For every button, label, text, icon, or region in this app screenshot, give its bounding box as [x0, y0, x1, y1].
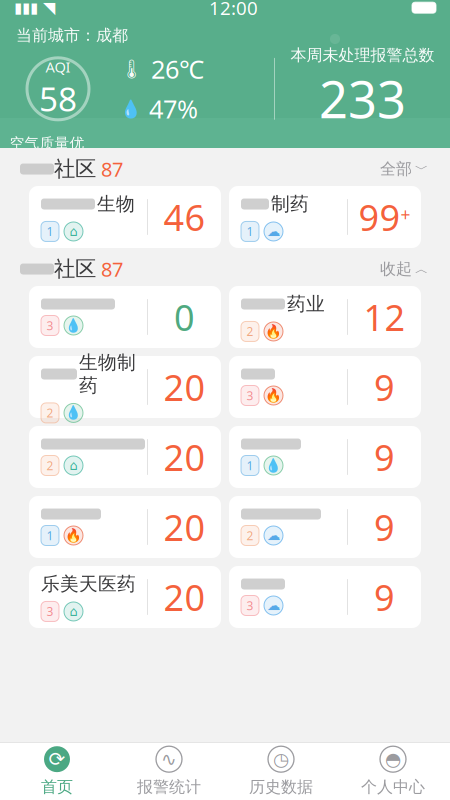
- staticText: 收起: [380, 259, 412, 279]
- button[interactable]: ◓: [337, 742, 449, 800]
- button[interactable]: 3: [229, 566, 421, 628]
- staticText: 历史数据: [249, 777, 313, 797]
- staticText: 9: [374, 573, 395, 621]
- button[interactable]: 2: [229, 496, 421, 558]
- staticText: ☁: [267, 598, 280, 613]
- staticText: 空气质量优: [9, 134, 84, 152]
- staticText: 20: [163, 573, 205, 621]
- staticText: 🔥: [265, 388, 282, 403]
- button[interactable]: 全部: [378, 155, 430, 183]
- button[interactable]: ∿: [113, 742, 225, 800]
- staticText: 58: [39, 76, 77, 121]
- button[interactable]: 收起: [378, 255, 430, 283]
- staticText: +: [400, 203, 410, 226]
- staticText: ⌂: [69, 604, 77, 619]
- staticText: ⌂: [69, 458, 77, 473]
- staticText: 12:00: [209, 0, 258, 20]
- button[interactable]: ◷: [225, 742, 337, 800]
- staticText: 🌡: [120, 58, 144, 80]
- staticText: 12: [363, 293, 405, 341]
- staticText: 87: [96, 156, 123, 182]
- staticText: 当前城市：成都: [16, 26, 128, 45]
- staticText: 1: [246, 223, 253, 239]
- staticText: AQI: [45, 57, 70, 76]
- staticText: ﹀: [415, 161, 428, 177]
- staticText: 💧: [65, 318, 82, 333]
- staticText: 9: [374, 363, 395, 411]
- staticText: 20: [163, 433, 205, 481]
- staticText: 3: [246, 387, 253, 403]
- staticText: ▮▮▮: [14, 0, 38, 16]
- button[interactable]: 生物制药: [29, 356, 221, 418]
- staticText: ︿: [415, 261, 428, 277]
- button[interactable]: 生物: [29, 186, 221, 248]
- staticText: 报警统计: [137, 777, 201, 797]
- staticText: 20: [163, 363, 205, 411]
- staticText: 制药: [271, 192, 309, 215]
- staticText: 47%: [149, 92, 198, 125]
- staticText: 3: [246, 597, 253, 613]
- staticText: 1: [46, 527, 53, 543]
- button[interactable]: 乐美天医药: [29, 566, 221, 628]
- staticText: 首页: [41, 777, 73, 797]
- staticText: 26℃: [151, 52, 204, 86]
- staticText: 生物: [97, 192, 135, 215]
- staticText: 🔥: [65, 528, 82, 543]
- button[interactable]: 药业: [229, 286, 421, 348]
- staticText: 3: [46, 317, 53, 333]
- button[interactable]: 制药: [229, 186, 421, 248]
- button[interactable]: ⟳: [1, 742, 113, 800]
- staticText: 1: [246, 457, 253, 473]
- staticText: 0: [174, 293, 195, 341]
- staticText: 全部: [380, 159, 412, 179]
- staticText: 99: [358, 193, 400, 241]
- button[interactable]: 1: [29, 496, 221, 558]
- staticText: 社区: [54, 156, 96, 182]
- staticText: ⌂: [69, 224, 77, 239]
- staticText: 🔥: [265, 324, 282, 339]
- staticText: 233: [319, 65, 406, 132]
- staticText: ◥: [43, 0, 55, 17]
- staticText: 20: [163, 503, 205, 551]
- staticText: ⟳: [48, 748, 65, 770]
- staticText: ∿: [161, 749, 177, 770]
- staticText: 社区: [54, 256, 96, 282]
- staticText: 2: [246, 527, 253, 543]
- staticText: 💧: [120, 99, 142, 118]
- staticText: 个人中心: [361, 777, 425, 797]
- staticText: 46: [163, 193, 205, 241]
- staticText: 💧: [65, 405, 82, 420]
- button[interactable]: 3: [229, 356, 421, 418]
- staticText: 生物制药: [79, 351, 136, 397]
- staticText: ☁: [267, 224, 280, 239]
- staticText: 9: [374, 433, 395, 481]
- staticText: 乐美天医药: [41, 572, 136, 595]
- staticText: 2: [46, 405, 53, 421]
- staticText: 2: [246, 323, 253, 339]
- staticText: 3: [46, 603, 53, 619]
- button[interactable]: 3: [29, 286, 221, 348]
- staticText: 本周未处理报警总数: [290, 45, 434, 65]
- staticText: 药业: [287, 292, 325, 315]
- staticText: 87: [96, 256, 123, 282]
- staticText: 1: [46, 223, 53, 239]
- staticText: ◓: [385, 749, 401, 770]
- staticText: ☁: [267, 528, 280, 543]
- staticText: ◷: [273, 749, 289, 770]
- staticText: 2: [46, 457, 53, 473]
- staticText: 9: [374, 503, 395, 551]
- staticText: 💧: [265, 458, 282, 473]
- button[interactable]: 2: [29, 426, 221, 488]
- button[interactable]: 1: [229, 426, 421, 488]
